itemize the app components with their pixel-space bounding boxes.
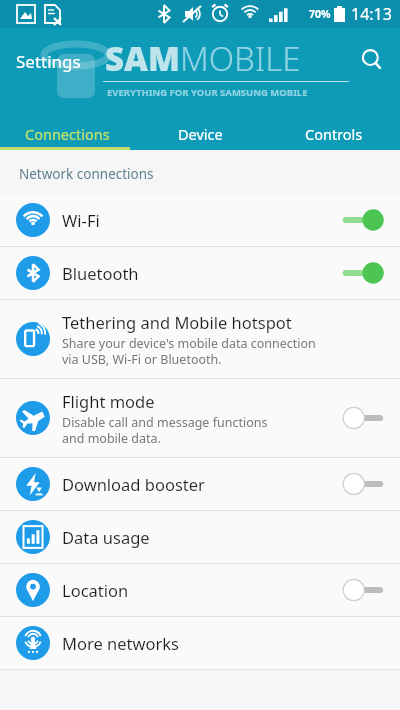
staticText: Download booster	[62, 473, 205, 495]
staticText: Flight mode	[62, 390, 155, 412]
button[interactable]: Controls	[267, 118, 400, 150]
button[interactable]: Tethering and Mobile hotspot	[0, 300, 400, 379]
staticText: Settings	[16, 50, 81, 73]
staticText: 70%	[309, 7, 331, 21]
staticText: EVERYTHING FOR YOUR SAMSUNG MOBILE	[107, 86, 308, 99]
button[interactable]: Toggle off	[340, 470, 386, 498]
staticText: Device	[178, 124, 223, 144]
staticText: Tethering and Mobile hotspot	[62, 311, 292, 333]
staticText: 14:13	[351, 3, 392, 25]
staticText: Share your device's mobile data connecti…	[62, 335, 316, 368]
button[interactable]: Toggle off	[340, 404, 386, 432]
button[interactable]: Download booster	[0, 458, 400, 511]
button[interactable]: Data usage	[0, 511, 400, 564]
button[interactable]: Device	[134, 118, 267, 150]
staticText: Controls	[305, 124, 363, 144]
button[interactable]: Flight mode	[0, 379, 400, 458]
button[interactable]: Wi-Fi	[0, 194, 400, 247]
button[interactable]: Location	[0, 564, 400, 617]
button[interactable]: Bluetooth	[0, 247, 400, 300]
staticText: Data usage	[62, 526, 150, 548]
button[interactable]: Toggle off	[340, 576, 386, 604]
staticText: Bluetooth	[62, 262, 139, 284]
staticText: Disable call and message functions and m…	[62, 414, 268, 447]
staticText: Connections	[25, 124, 110, 144]
staticText: MOBILE	[180, 36, 301, 81]
button[interactable]: Toggle on	[340, 206, 386, 234]
staticText: Network connections	[19, 165, 154, 183]
button[interactable]: More networks	[0, 617, 400, 670]
button[interactable]: Toggle on	[340, 259, 386, 287]
button[interactable]: Connections	[0, 118, 134, 150]
staticText: SAM	[105, 36, 180, 81]
staticText: More networks	[62, 632, 179, 654]
staticText: Location	[62, 579, 129, 601]
button[interactable]: Search	[348, 36, 396, 84]
staticText: Wi-Fi	[62, 209, 100, 231]
